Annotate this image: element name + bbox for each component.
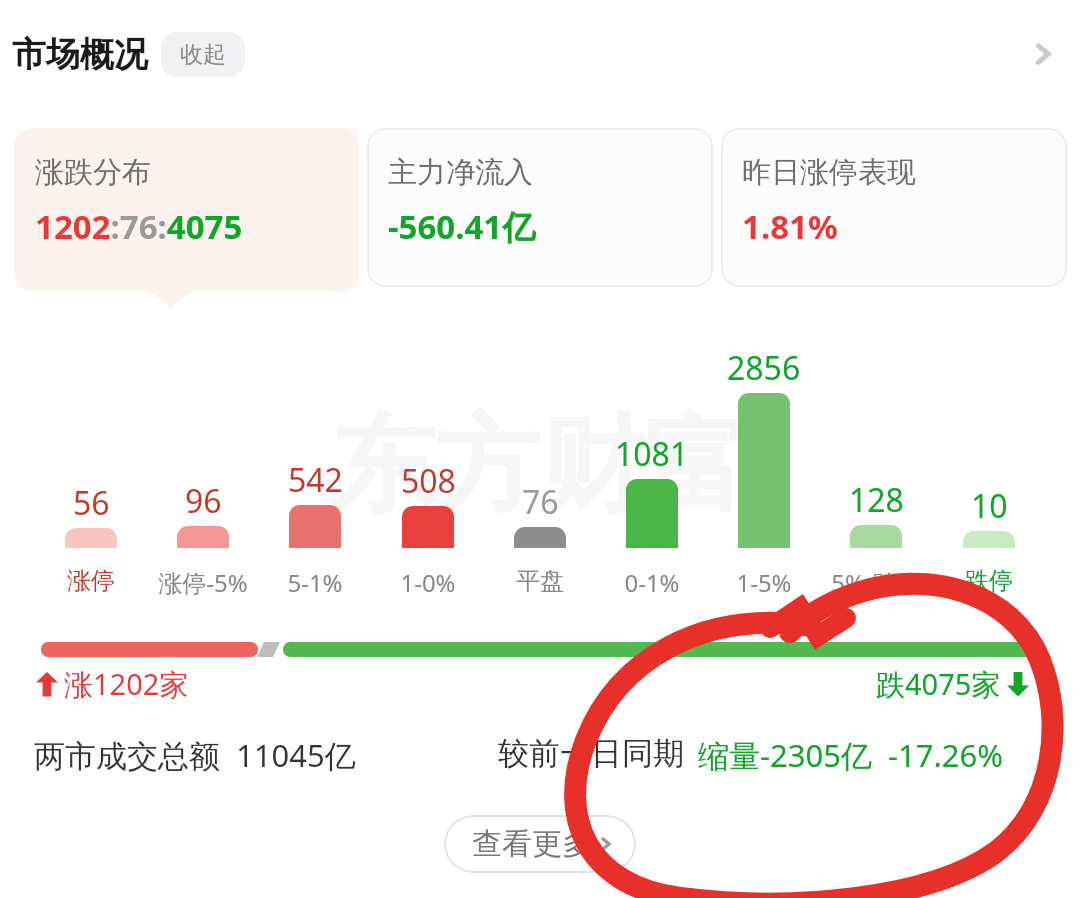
staticText: 542 — [288, 458, 343, 502]
staticText: 主力净流入 — [388, 154, 533, 191]
staticText: 涨停-5% — [158, 566, 248, 599]
staticText: 两市成交总额 11045亿 — [34, 734, 356, 776]
button[interactable]: 昨日涨停表现 — [721, 128, 1067, 287]
staticText: 96 — [185, 479, 222, 523]
staticText: 1-0% — [400, 566, 456, 599]
staticText: 跌4075家 — [876, 664, 1001, 704]
button[interactable]: 收起 — [161, 32, 245, 77]
staticText: 128 — [849, 478, 904, 522]
staticText: 10 — [971, 484, 1008, 528]
staticText: 涨跌分布 — [35, 154, 151, 191]
staticText: 平盘 — [516, 566, 564, 596]
staticText: 收起 — [180, 40, 226, 69]
staticText: 5-1% — [287, 566, 343, 599]
staticText: 市场概况 — [12, 33, 148, 76]
staticText: 涨停 — [67, 566, 115, 596]
staticText: 1.81% — [742, 204, 838, 249]
staticText: 涨1202家 — [64, 664, 189, 704]
staticText: 1-5% — [736, 566, 792, 599]
staticText: 较前一日同期 — [498, 734, 684, 773]
button[interactable]: 查看更多 — [444, 815, 636, 873]
button[interactable]: More — [1014, 25, 1072, 83]
staticText: 缩量-2305亿 — [698, 734, 872, 776]
staticText: 2856 — [727, 346, 801, 390]
staticText: -17.26% — [888, 734, 1003, 776]
button[interactable]: 涨跌分布 — [14, 128, 359, 291]
staticText: 508 — [401, 459, 456, 503]
staticText: 东方财富 — [330, 400, 750, 532]
staticText: 昨日涨停表现 — [742, 154, 916, 191]
button[interactable]: 主力净流入 — [367, 128, 713, 287]
staticText: 76 — [522, 480, 559, 524]
staticText: -560.41亿 — [388, 204, 536, 249]
staticText: 5%-跌停 — [831, 566, 921, 599]
staticText: 1202:76:4075 — [35, 204, 243, 249]
staticText: 查看更多 — [472, 825, 592, 863]
staticText: 1081 — [615, 432, 689, 476]
staticText: 56 — [73, 481, 110, 525]
staticText: 跌停 — [965, 566, 1013, 596]
staticText: 0-1% — [624, 566, 680, 599]
